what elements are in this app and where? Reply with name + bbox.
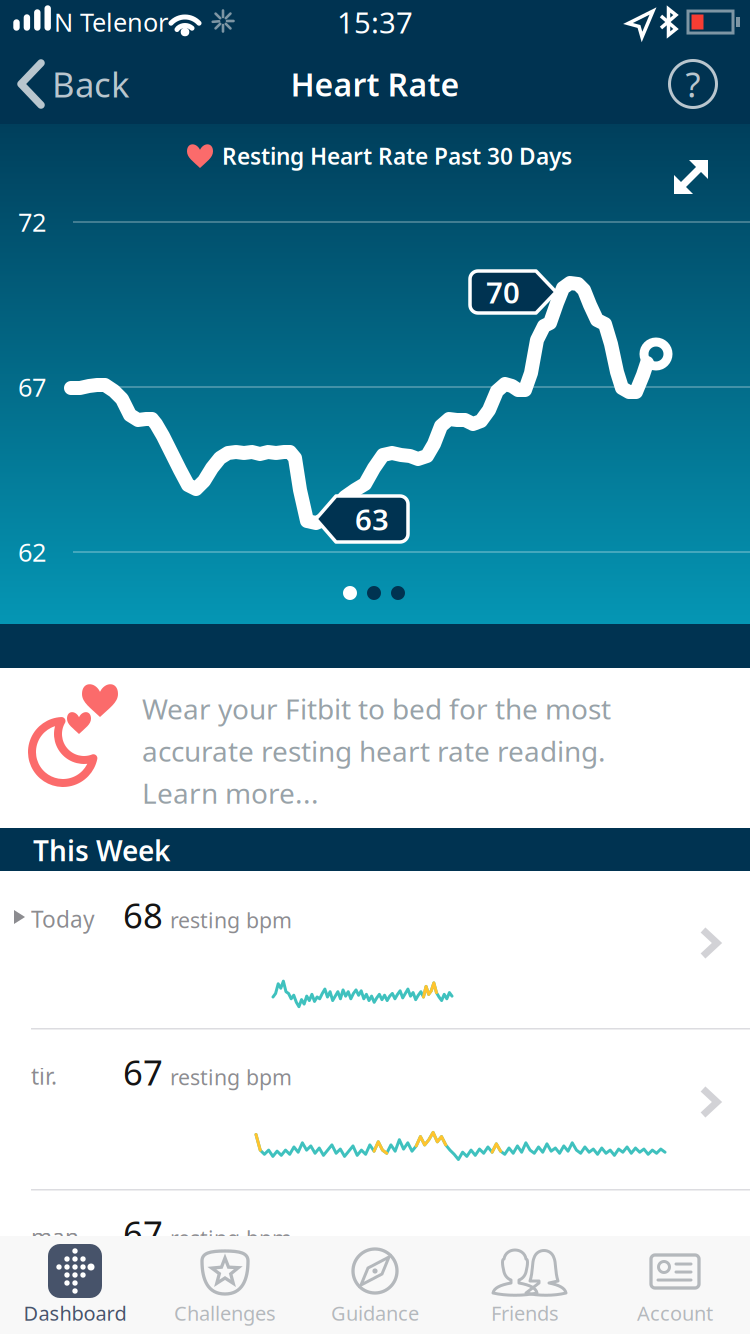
staticText: 67: [123, 1210, 163, 1256]
staticText: 72: [18, 205, 46, 239]
button[interactable]: Help: [655, 44, 731, 124]
staticText: N Telenor: [54, 5, 168, 39]
staticText: Wear your Fitbit to bed for the most: [142, 690, 611, 727]
staticText: ?: [685, 61, 700, 107]
button[interactable]: Learn more...: [142, 774, 319, 812]
button[interactable]: Dashboard: [0, 1236, 150, 1334]
staticText: Account: [637, 1300, 713, 1326]
button[interactable]: man.: [0, 1191, 750, 1238]
staticText: 67: [123, 1049, 163, 1095]
staticText: Back: [52, 61, 130, 107]
staticText: Heart Rate: [290, 63, 459, 105]
button[interactable]: Account: [600, 1236, 750, 1334]
button[interactable]: tir.: [0, 1030, 750, 1191]
staticText: 15:37: [337, 2, 413, 41]
staticText: 63: [355, 499, 389, 538]
button[interactable]: Expand chart: [669, 155, 713, 199]
staticText: man.: [31, 1222, 85, 1252]
staticText: resting bpm: [170, 1063, 292, 1091]
staticText: Learn more...: [142, 774, 319, 812]
staticText: Dashboard: [23, 1300, 126, 1326]
button[interactable]: Challenges: [150, 1236, 300, 1334]
staticText: Guidance: [331, 1300, 419, 1326]
staticText: resting bpm: [170, 1224, 292, 1252]
staticText: 67: [18, 370, 46, 404]
staticText: tir.: [31, 1061, 57, 1091]
staticText: Resting Heart Rate Past 30 Days: [222, 141, 572, 171]
button[interactable]: Friends: [450, 1236, 600, 1334]
staticText: 68: [123, 892, 163, 938]
staticText: accurate resting heart rate reading.: [142, 732, 606, 769]
staticText: 70: [486, 272, 520, 311]
button[interactable]: Guidance: [300, 1236, 450, 1334]
staticText: Friends: [491, 1300, 559, 1326]
staticText: This Week: [33, 832, 170, 869]
staticText: Today: [31, 904, 95, 934]
button[interactable]: Back: [0, 44, 150, 124]
button[interactable]: Today: [0, 871, 750, 1030]
staticText: 62: [18, 535, 46, 569]
staticText: resting bpm: [170, 906, 292, 934]
staticText: Challenges: [174, 1300, 276, 1326]
